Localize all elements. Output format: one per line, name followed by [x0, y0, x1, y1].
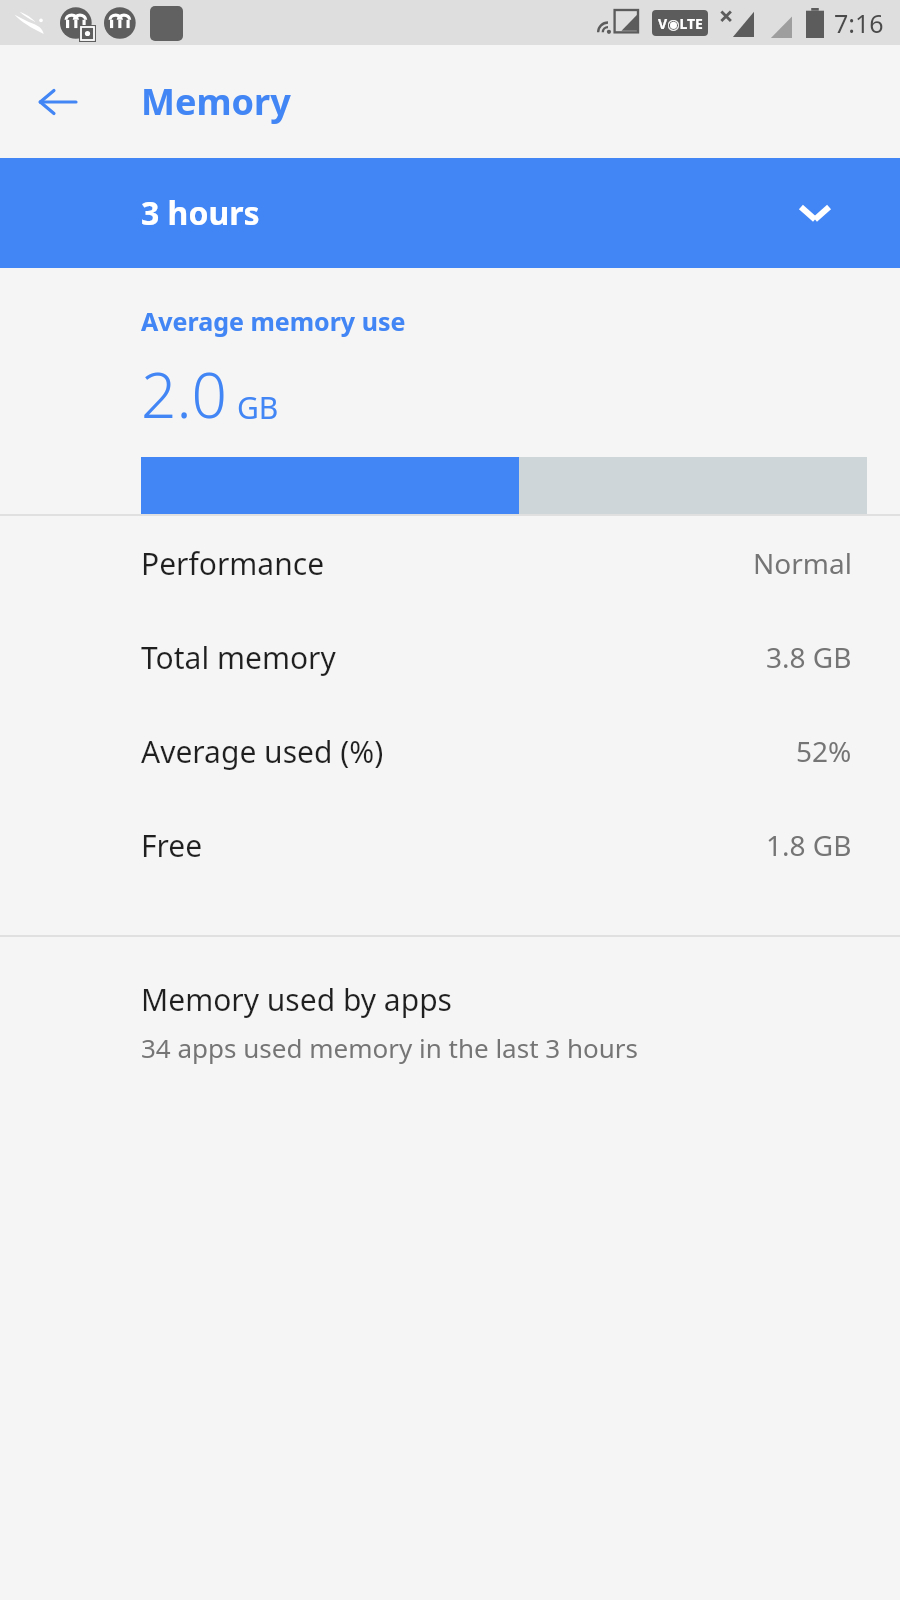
- staticText: 1.8 GB: [766, 826, 852, 864]
- button[interactable]: Average used (%): [0, 704, 900, 798]
- staticText: GB: [237, 387, 279, 428]
- staticText: Normal: [753, 544, 852, 582]
- staticText: 34 apps used memory in the last 3 hours: [141, 1030, 638, 1065]
- button[interactable]: Total memory: [0, 610, 900, 704]
- staticText: Performance: [141, 543, 325, 584]
- staticText: 2.0: [141, 352, 227, 436]
- staticText: Total memory: [141, 637, 336, 678]
- staticText: 3.8 GB: [766, 638, 852, 676]
- staticText: 7:16: [834, 6, 884, 40]
- staticText: 3 hours: [141, 191, 260, 235]
- staticText: Average memory use: [141, 304, 406, 338]
- staticText: V◉LTE: [658, 14, 703, 33]
- button[interactable]: Memory used by apps: [0, 937, 900, 1095]
- staticText: Average used (%): [141, 731, 384, 772]
- button[interactable]: Free: [0, 798, 900, 892]
- staticText: Memory: [141, 77, 291, 126]
- button[interactable]: Performance: [0, 516, 900, 610]
- button[interactable]: Navigate up: [20, 65, 94, 139]
- staticText: 52%: [796, 732, 852, 770]
- staticText: Free: [141, 825, 203, 866]
- button[interactable]: 3 hours: [0, 158, 900, 268]
- staticText: Memory used by apps: [141, 979, 452, 1020]
